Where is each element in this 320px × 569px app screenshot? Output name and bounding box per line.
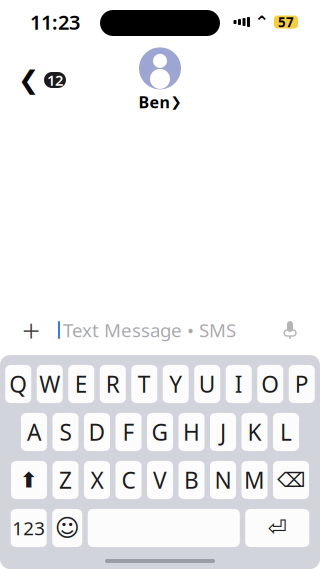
button[interactable]: Return: [245, 509, 309, 547]
button[interactable]: V: [147, 461, 173, 499]
button[interactable]: P: [289, 365, 315, 403]
button[interactable]: Record audio message: [276, 315, 304, 345]
staticText: M: [244, 465, 265, 495]
staticText: I: [235, 369, 243, 399]
staticText: ⬆: [20, 468, 38, 492]
staticText: Z: [59, 465, 72, 495]
staticText: F: [122, 417, 134, 447]
staticText: V: [153, 465, 167, 495]
button[interactable]: I: [226, 365, 252, 403]
staticText: C: [121, 465, 135, 495]
staticText: H: [183, 417, 200, 447]
button[interactable]: B: [178, 461, 204, 499]
staticText: K: [247, 417, 261, 447]
button[interactable]: X: [84, 461, 110, 499]
button[interactable]: L: [273, 413, 299, 451]
staticText: U: [199, 369, 216, 399]
button[interactable]: Q: [5, 365, 31, 403]
staticText: L: [280, 417, 292, 447]
button[interactable]: Z: [52, 461, 78, 499]
button[interactable]: K: [241, 413, 267, 451]
button[interactable]: Back to 12 conversations: [0, 60, 66, 100]
button[interactable]: F: [115, 413, 141, 451]
button[interactable]: N: [210, 461, 236, 499]
button[interactable]: J: [210, 413, 236, 451]
button[interactable]: Emoji: [52, 509, 82, 547]
button[interactable]: Add attachment: [16, 315, 46, 345]
staticText: P: [295, 369, 309, 399]
button[interactable]: M: [241, 461, 267, 499]
button[interactable]: Numbers and symbols: [11, 509, 47, 547]
button[interactable]: O: [257, 365, 283, 403]
staticText: ☺: [55, 514, 80, 542]
staticText: T: [138, 369, 151, 399]
staticText: ❮: [18, 66, 39, 94]
button[interactable]: S: [52, 413, 78, 451]
staticText: N: [214, 465, 231, 495]
staticText: ⌃: [254, 12, 269, 32]
staticText: Text Message • SMS: [63, 318, 236, 342]
button[interactable]: U: [194, 365, 220, 403]
staticText: B: [184, 465, 199, 495]
staticText: E: [75, 369, 88, 399]
button[interactable]: W: [37, 365, 63, 403]
staticText: 123: [12, 516, 45, 540]
staticText: W: [39, 369, 60, 399]
staticText: ⏎: [268, 515, 287, 541]
button[interactable]: A: [21, 413, 47, 451]
button[interactable]: R: [100, 365, 126, 403]
staticText: J: [220, 417, 226, 447]
staticText: Ben: [138, 91, 169, 113]
button[interactable]: T: [131, 365, 157, 403]
staticText: D: [88, 417, 105, 447]
button[interactable]: Delete: [273, 461, 309, 499]
staticText: 11:23: [30, 9, 80, 35]
staticText: X: [90, 465, 103, 495]
staticText: ❯: [170, 94, 181, 109]
staticText: R: [106, 369, 120, 399]
button[interactable]: Ben, contact details: [138, 47, 181, 113]
button[interactable]: E: [68, 365, 94, 403]
staticText: O: [261, 369, 279, 399]
staticText: Q: [9, 369, 27, 399]
staticText: 12: [47, 70, 63, 90]
staticText: +: [22, 309, 40, 351]
staticText: A: [27, 417, 41, 447]
button[interactable]: H: [178, 413, 204, 451]
staticText: G: [151, 417, 168, 447]
staticText: S: [59, 417, 71, 447]
button[interactable]: C: [115, 461, 141, 499]
button[interactable]: G: [147, 413, 173, 451]
button[interactable]: D: [84, 413, 110, 451]
staticText: ⌫: [277, 469, 305, 491]
button[interactable]: Y: [163, 365, 189, 403]
button[interactable]: Shift: [11, 461, 47, 499]
staticText: Y: [169, 369, 182, 399]
staticText: 57: [278, 13, 294, 31]
